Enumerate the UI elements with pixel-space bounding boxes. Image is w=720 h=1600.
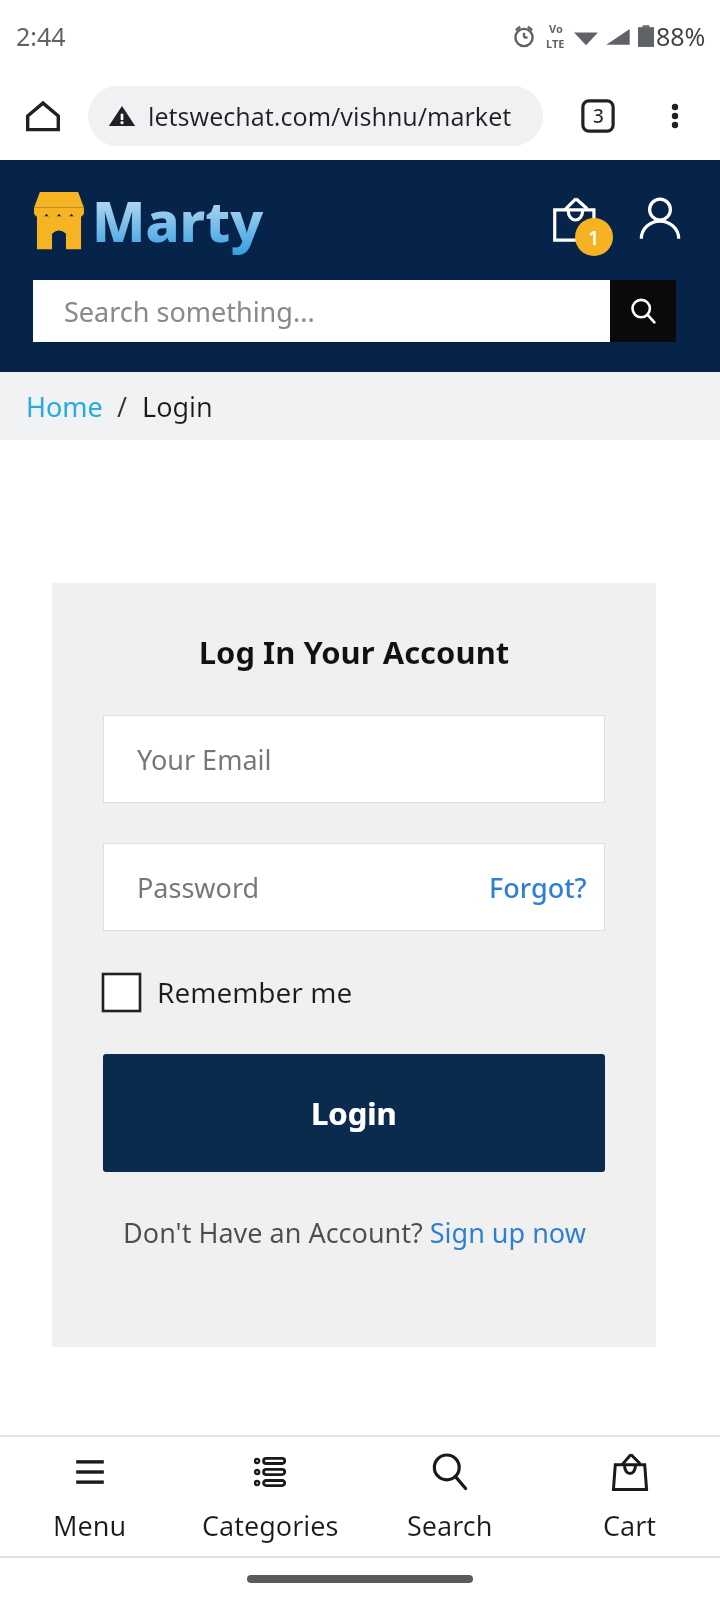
button[interactable]: Forgot? [489,869,587,906]
button[interactable]: Search [360,1437,540,1556]
staticText: Don't Have an Account? Sign up now [123,1214,586,1251]
staticText: Your Email [137,741,272,778]
button[interactable]: letswechat.com/vishnu/market [88,86,543,146]
staticText: / [103,388,142,425]
button[interactable]: Cart [540,1437,720,1556]
staticText: Login [142,388,213,425]
button[interactable]: More options [652,93,698,139]
button[interactable]: Remember me [103,973,353,1011]
staticText: Login [311,1092,397,1134]
button[interactable]: Login [103,1054,605,1172]
staticText: Log In Your Account [103,631,605,673]
button[interactable]: Search [610,280,676,342]
staticText: Forgot? [489,869,587,906]
staticText: 1 [588,224,600,251]
button[interactable]: Cart, 1 item [544,188,608,252]
staticText: Cart [603,1507,657,1544]
staticText: letswechat.com/vishnu/market [148,99,512,133]
button[interactable]: Your Email [103,715,605,803]
staticText: Categories [202,1507,339,1544]
button[interactable]: Marty [30,182,264,258]
button[interactable]: Home [18,91,68,141]
staticText: Menu [53,1507,127,1544]
button[interactable]: Home [26,388,103,425]
staticText: Search [407,1507,493,1544]
button[interactable]: Search something... [33,280,610,342]
staticText: Home [26,388,103,425]
staticText: 3 [593,103,604,129]
button[interactable]: Tabs, 3 open [576,94,620,138]
button[interactable]: Don't Have an Account? Sign up now [103,1214,605,1251]
staticText: LTE [546,36,565,51]
staticText: Search something... [64,293,315,330]
staticText: 2:44 [16,19,66,53]
button[interactable]: Categories [180,1437,360,1556]
button[interactable]: Menu [0,1437,180,1556]
staticText: Password [137,869,260,906]
button[interactable]: Password [103,843,605,931]
staticText: Marty [92,182,264,258]
staticText: 88% [656,19,706,53]
staticText: Remember me [157,973,353,1011]
staticText: Vo [549,21,563,36]
button[interactable]: Account [630,190,690,250]
